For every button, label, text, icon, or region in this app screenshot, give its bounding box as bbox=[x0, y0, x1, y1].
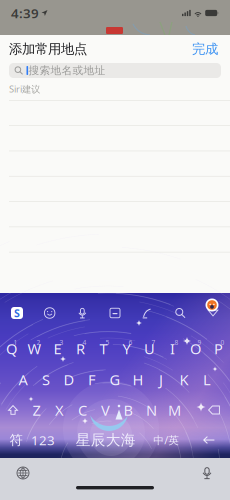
button[interactable]: 符 bbox=[4, 428, 28, 452]
staticText: Siri建议 bbox=[9, 83, 40, 95]
button[interactable]: 2 bbox=[23, 337, 46, 359]
staticText: 9 bbox=[197, 338, 201, 347]
button[interactable]: F bbox=[80, 368, 103, 390]
staticText: E bbox=[53, 339, 61, 358]
button[interactable]: X bbox=[48, 399, 71, 421]
button[interactable]: V bbox=[94, 399, 117, 421]
button[interactable]: 删除 bbox=[201, 397, 227, 423]
staticText: B bbox=[123, 400, 133, 420]
staticText: 7 bbox=[151, 338, 155, 347]
staticText: 搜索地名或地址 bbox=[29, 64, 106, 77]
button[interactable]: 切换大小写 bbox=[1, 397, 25, 423]
staticText: Y bbox=[122, 339, 130, 358]
button[interactable]: 手写输入 bbox=[135, 301, 161, 325]
staticText: 1 bbox=[13, 338, 17, 347]
staticText: F bbox=[88, 370, 96, 389]
button[interactable]: 账号 bbox=[205, 298, 219, 312]
staticText: W bbox=[27, 339, 41, 358]
button[interactable]: 3 bbox=[46, 337, 69, 359]
button[interactable]: 搜索 bbox=[167, 301, 193, 325]
button[interactable]: 123 bbox=[28, 428, 58, 452]
button[interactable]: 换行 bbox=[196, 428, 222, 452]
staticText: 6 bbox=[128, 338, 132, 347]
staticText: S bbox=[14, 306, 20, 320]
staticText: X bbox=[55, 400, 64, 420]
staticText: A bbox=[18, 370, 27, 389]
button[interactable]: C bbox=[71, 399, 94, 421]
button[interactable]: 星辰大海 bbox=[75, 428, 137, 452]
button[interactable]: 搜狗输入法 bbox=[4, 301, 30, 325]
staticText: U bbox=[144, 339, 155, 358]
button[interactable]: K bbox=[172, 368, 195, 390]
staticText: 4 bbox=[82, 338, 86, 347]
staticText: 中/英 bbox=[153, 433, 179, 447]
button[interactable]: A bbox=[11, 368, 34, 390]
staticText: V bbox=[101, 400, 110, 420]
staticText: 添加常用地点 bbox=[9, 41, 87, 57]
staticText: 3 bbox=[59, 338, 63, 347]
button[interactable]: Z bbox=[25, 399, 48, 421]
staticText: N bbox=[146, 400, 157, 420]
staticText: I bbox=[170, 339, 175, 358]
button[interactable]: M bbox=[163, 399, 186, 421]
staticText: Z bbox=[32, 400, 40, 420]
staticText: 符 bbox=[9, 432, 22, 448]
button[interactable]: 收起键盘工具栏 bbox=[200, 301, 226, 325]
button[interactable]: 8 bbox=[161, 337, 184, 359]
staticText: 完成 bbox=[192, 41, 218, 57]
button[interactable]: D bbox=[57, 368, 80, 390]
button[interactable]: G bbox=[103, 368, 126, 390]
button[interactable]: L bbox=[195, 368, 218, 390]
staticText: S bbox=[42, 370, 50, 389]
staticText: H bbox=[132, 370, 143, 389]
button[interactable]: 语音输入 bbox=[69, 301, 95, 325]
staticText: G bbox=[109, 370, 120, 389]
staticText: R bbox=[76, 339, 85, 358]
button[interactable]: 完成 bbox=[189, 37, 221, 61]
button[interactable]: S bbox=[34, 368, 57, 390]
staticText: K bbox=[179, 370, 188, 389]
staticText: 5 bbox=[105, 338, 109, 347]
staticText: T bbox=[99, 339, 107, 358]
staticText: 星辰大海 bbox=[76, 431, 136, 449]
button[interactable]: B bbox=[117, 399, 140, 421]
staticText: 2 bbox=[36, 338, 40, 347]
button[interactable]: H bbox=[126, 368, 149, 390]
button[interactable]: 6 bbox=[115, 337, 138, 359]
staticText: Q bbox=[6, 339, 17, 358]
button[interactable]: 5 bbox=[92, 337, 115, 359]
staticText: 123 bbox=[31, 431, 55, 449]
staticText: J bbox=[159, 370, 163, 389]
button[interactable]: 0 bbox=[207, 337, 230, 359]
button[interactable]: J bbox=[149, 368, 172, 390]
button[interactable]: 7 bbox=[138, 337, 161, 359]
staticText: L bbox=[203, 370, 211, 389]
button[interactable]: 剪贴板 bbox=[102, 301, 128, 325]
button[interactable]: 搜索地名或地址 bbox=[9, 63, 221, 78]
staticText: M bbox=[168, 400, 181, 420]
staticText: C bbox=[78, 400, 87, 420]
button[interactable]: 听写 bbox=[192, 462, 222, 484]
button[interactable]: 9 bbox=[184, 337, 207, 359]
button[interactable]: 切换键盘 bbox=[8, 462, 38, 484]
button[interactable]: 4 bbox=[69, 337, 92, 359]
button[interactable]: 中/英 bbox=[153, 428, 179, 452]
staticText: 4:39 bbox=[11, 4, 39, 22]
staticText: P bbox=[214, 339, 223, 358]
staticText: D bbox=[63, 370, 74, 389]
button[interactable]: 1 bbox=[0, 337, 23, 359]
staticText: 8 bbox=[174, 338, 178, 347]
button[interactable]: 表情 bbox=[37, 301, 63, 325]
button[interactable]: N bbox=[140, 399, 163, 421]
staticText: O bbox=[190, 339, 201, 358]
staticText: 0 bbox=[220, 338, 224, 347]
